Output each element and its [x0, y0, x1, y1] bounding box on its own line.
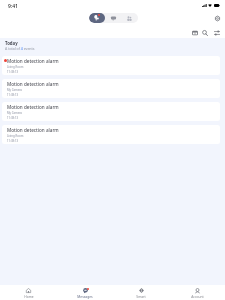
button[interactable]: Home	[0, 285, 57, 300]
button[interactable]: Messages	[57, 285, 113, 300]
staticText: Living Room	[7, 134, 24, 138]
staticText: Motion detection alarm	[7, 104, 59, 110]
staticText: Today	[5, 40, 18, 46]
staticText: 11:38:13	[7, 70, 19, 74]
staticText: Motion detection alarm	[7, 81, 59, 87]
staticText: My Camera	[7, 88, 22, 92]
button[interactable]: Account	[169, 285, 225, 300]
button[interactable]: Messages	[105, 13, 121, 23]
staticText: Living Room	[7, 65, 24, 69]
button[interactable]: Family	[121, 13, 137, 23]
button[interactable]: Smart	[113, 285, 169, 300]
staticText: Home	[24, 294, 34, 298]
button[interactable]: Motion detection alarm	[2, 79, 220, 98]
staticText: Messages	[77, 294, 93, 298]
button[interactable]: Search	[199, 27, 210, 38]
staticText: 9:41	[8, 3, 18, 10]
staticText: 11:38:13	[7, 116, 19, 120]
staticText: A total of 4 events	[5, 46, 35, 51]
button[interactable]: Settings	[212, 13, 223, 24]
button[interactable]: Camera	[189, 27, 200, 38]
staticText: 11:38:13	[7, 139, 19, 143]
button[interactable]: Alarms	[89, 13, 105, 23]
staticText: Motion detection alarm	[7, 127, 59, 133]
button[interactable]: Motion detection alarm	[2, 56, 220, 75]
staticText: Motion detection alarm	[7, 58, 59, 64]
staticText: My Camera	[7, 111, 22, 115]
button[interactable]: Filter	[211, 27, 222, 38]
button[interactable]: Motion detection alarm	[2, 102, 220, 121]
staticText: Smart	[136, 294, 146, 298]
button[interactable]: Motion detection alarm	[2, 125, 220, 144]
staticText: 11:38:13	[7, 93, 19, 97]
staticText: Account	[191, 294, 204, 298]
